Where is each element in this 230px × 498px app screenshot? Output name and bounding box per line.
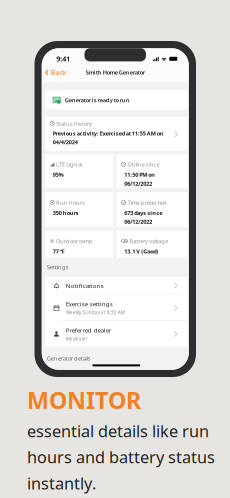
button[interactable]: Notifications [45,277,188,294]
staticText: Online since [127,160,159,168]
staticText: 06/12/2022 [124,218,152,225]
button[interactable]: Back [42,66,67,79]
staticText: 350 hours [53,209,79,216]
staticText: 06/12/2022 [124,180,152,187]
staticText: 9:41 [56,54,70,64]
staticText: essential details like run [27,420,209,442]
staticText: 673 days since [124,209,162,216]
staticText: Battery voltage [129,237,168,245]
staticText: Status history [56,119,92,127]
staticText: Generator is ready to run [65,96,130,104]
staticText: 95% [53,171,64,178]
button[interactable]: Exercise settings [45,295,188,321]
staticText: 04/4/2024 [53,138,78,146]
staticText: My Dealer [66,335,88,342]
button[interactable]: Preferred dealer [45,321,188,347]
staticText: instantly. [27,472,96,494]
staticText: Time protected [127,199,166,206]
staticText: hours and battery status [27,446,215,468]
staticText: Outdoor temp [56,237,93,245]
staticText: Preferred dealer [66,326,112,334]
staticText: 11:50 PM on [124,171,155,178]
staticText: Notifications [66,281,104,290]
staticText: Exercise settings [66,300,113,308]
staticText: Weekly, Sunday at 8:30 AM [66,309,125,316]
staticText: LTE signal [56,160,82,168]
staticText: MONITOR [27,384,141,416]
staticText: 77 °F [53,248,65,255]
staticText: 13.1 V (Good) [124,248,158,255]
staticText: Generator details [47,354,91,362]
staticText: Run hours [56,199,85,206]
staticText: Back [51,68,67,77]
staticText: Settings [47,263,69,271]
staticText: Previous activity: Exercised at 11:55 AM… [53,129,164,137]
staticText: Smith Home Generator [86,68,145,76]
